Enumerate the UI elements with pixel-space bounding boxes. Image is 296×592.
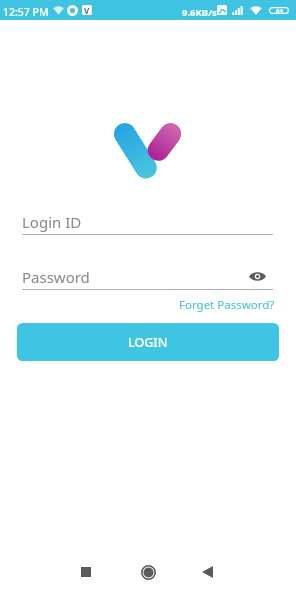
staticText: V — [84, 5, 90, 15]
button[interactable]: LOGIN — [17, 323, 279, 361]
button[interactable]: Recents — [66, 555, 106, 589]
button[interactable]: Forget Password? — [176, 295, 278, 315]
staticText: Login ID — [22, 212, 82, 232]
staticText: Forget Password? — [179, 297, 275, 313]
staticText: 64 — [276, 7, 283, 14]
button[interactable]: Home — [128, 555, 168, 589]
staticText: Password — [22, 267, 90, 287]
staticText: 9.6KB/s — [182, 6, 217, 19]
staticText: 12:57 PM — [3, 5, 49, 19]
staticText: LOGIN — [128, 334, 168, 351]
button[interactable]: Show password — [244, 263, 270, 289]
button[interactable]: Back — [187, 555, 227, 589]
